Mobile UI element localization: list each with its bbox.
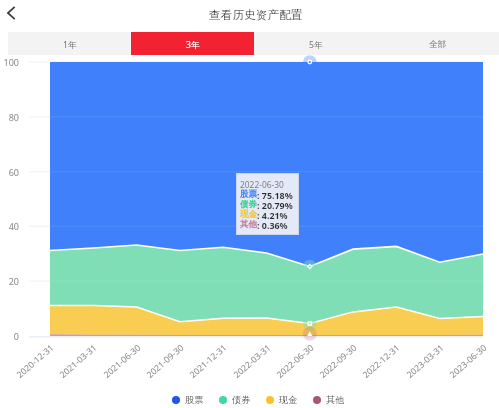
staticText: 100 [3,56,19,68]
staticText: 现金 [240,209,257,219]
button[interactable]: 1年 [8,32,131,55]
staticText: : 4.21% [257,209,288,219]
staticText: 5年 [309,39,323,51]
staticText: 20 [8,275,19,287]
button[interactable]: 3年 [131,32,254,55]
button[interactable]: 5年 [254,32,377,55]
staticText: 2021-03-31 [57,341,100,381]
staticText: 2022-06-30 [274,341,317,381]
staticText: 股票 [185,394,204,406]
button[interactable]: 股票 [172,394,204,406]
staticText: 其他 [326,394,345,406]
staticText: 1年 [63,39,77,51]
staticText: 全部 [429,39,447,50]
staticText: 2022-03-31 [231,341,274,381]
staticText: 股票 [240,189,257,199]
staticText: 其他 [240,219,257,229]
staticText: 2022-06-30 [240,179,284,189]
staticText: 2021-12-31 [187,341,230,381]
button[interactable]: 债券 [219,394,251,406]
staticText: 2022-09-30 [317,341,360,381]
staticText: 债券 [232,394,251,406]
button[interactable]: 现金 [266,394,298,406]
staticText: 2020-12-31 [14,341,57,381]
staticText: 80 [8,111,19,123]
staticText: 2021-06-30 [101,341,144,381]
button[interactable]: Back [0,0,24,28]
staticText: 债券 [240,199,257,209]
button[interactable]: 全部 [377,32,499,55]
staticText: 2023-03-31 [404,341,447,381]
staticText: : 20.79% [257,199,293,209]
staticText: : 0.36% [257,219,288,229]
staticText: 2022-12-31 [360,341,403,381]
staticText: : 75.18% [257,189,293,199]
staticText: 现金 [279,394,298,406]
staticText: 查看历史资产配置 [209,8,303,23]
staticText: 0 [13,330,19,342]
staticText: 3年 [186,39,200,51]
staticText: 60 [8,166,19,178]
button[interactable]: 其他 [313,394,345,406]
staticText: 40 [8,220,19,232]
staticText: 2023-06-30 [447,341,490,381]
staticText: 2021-09-30 [144,341,187,381]
